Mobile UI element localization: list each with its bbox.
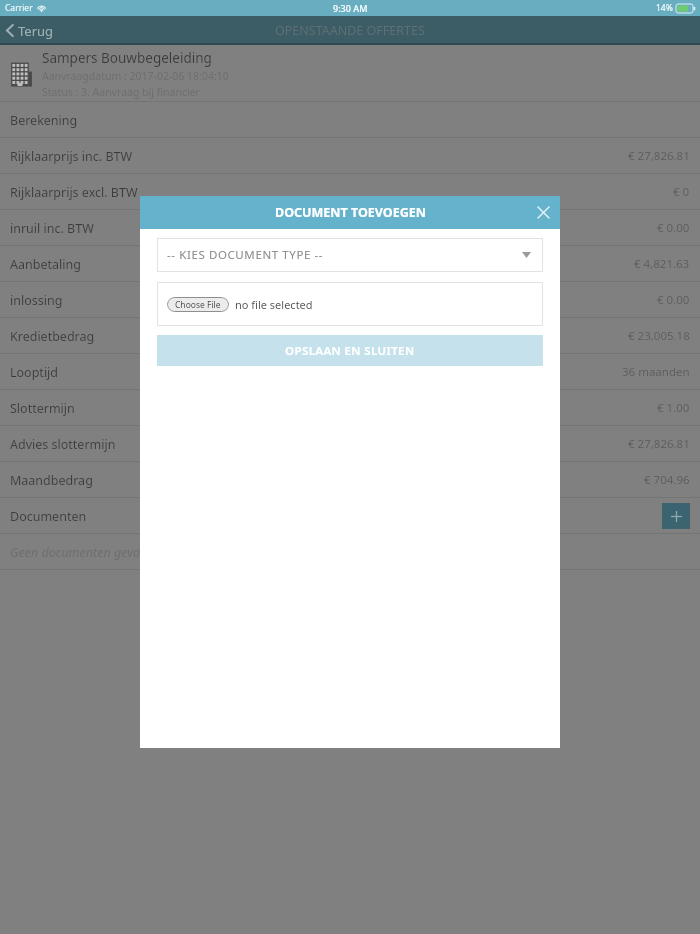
staticText: DOCUMENT TOEVOEGEN — [275, 204, 426, 221]
staticText: Carrier — [5, 2, 33, 14]
staticText: Aanbetaling — [10, 256, 81, 273]
button[interactable]: Terug — [0, 16, 64, 45]
staticText: Maandbedrag — [10, 472, 93, 489]
staticText: € 704.96 — [644, 472, 690, 488]
button[interactable]: Kredietbedrag — [0, 318, 700, 354]
button[interactable]: OPSLAAN EN SLUITEN — [157, 335, 543, 366]
staticText: inlossing — [10, 292, 63, 309]
staticText: € 23,005.18 — [628, 328, 690, 344]
staticText: 36 maanden — [622, 364, 690, 380]
staticText: Status : 3. Aanvraag bij financier — [42, 85, 200, 99]
staticText: € 0.00 — [657, 292, 690, 308]
staticText: Terug — [18, 22, 54, 40]
button[interactable]: Berekening — [0, 102, 700, 138]
staticText: Rijklaarprijs excl. BTW — [10, 184, 138, 201]
button[interactable]: Rijklaarprijs excl. BTW — [0, 174, 700, 210]
button[interactable]: Looptijd — [0, 354, 700, 390]
staticText: 14% — [656, 2, 673, 14]
staticText: Rijklaarprijs inc. BTW — [10, 148, 133, 165]
staticText: no file selected — [235, 297, 313, 312]
staticText: € 27,826.81 — [628, 148, 690, 164]
staticText: Advies slottermijn — [10, 436, 116, 453]
staticText: inruil inc. BTW — [10, 220, 94, 237]
button[interactable]: inruil inc. BTW — [0, 210, 700, 246]
button[interactable]: Maandbedrag — [0, 462, 700, 498]
staticText: € 0 — [673, 184, 690, 200]
staticText: € 0.00 — [657, 220, 690, 236]
staticText: Choose File — [175, 299, 221, 311]
staticText: € 1.00 — [657, 400, 690, 416]
staticText: -- KIES DOCUMENT TYPE -- — [167, 247, 324, 263]
staticText: Berekening — [10, 112, 78, 129]
button[interactable]: inlossing — [0, 282, 700, 318]
button[interactable]: Documenten — [0, 498, 700, 534]
button[interactable]: Slottermijn — [0, 390, 700, 426]
button[interactable]: Document toevoegen — [662, 503, 690, 529]
staticText: Aanvraagdatum : 2017-02-06 18:04:10 — [42, 69, 229, 83]
button[interactable]: Rijklaarprijs inc. BTW — [0, 138, 700, 174]
button[interactable]: Sampers Bouwbegeleiding — [0, 45, 700, 102]
button[interactable]: Advies slottermijn — [0, 426, 700, 462]
button[interactable]: Sluiten — [527, 196, 560, 229]
staticText: Looptijd — [10, 364, 59, 381]
staticText: Geen documenten gevonden — [10, 544, 168, 561]
staticText: Slottermijn — [10, 400, 75, 417]
staticText: OPSLAAN EN SLUITEN — [285, 343, 415, 359]
staticText: Documenten — [10, 508, 87, 525]
staticText: Kredietbedrag — [10, 328, 95, 345]
button[interactable]: -- KIES DOCUMENT TYPE -- — [157, 238, 543, 272]
staticText: € 27,826.81 — [628, 436, 690, 452]
staticText: € 4,821.63 — [634, 256, 690, 272]
staticText: OPENSTAANDE OFFERTES — [275, 22, 425, 39]
button[interactable]: Choose File — [167, 297, 229, 312]
button[interactable]: Aanbetaling — [0, 246, 700, 282]
staticText: 9:30 AM — [333, 2, 368, 14]
staticText: Sampers Bouwbegeleiding — [42, 49, 212, 67]
